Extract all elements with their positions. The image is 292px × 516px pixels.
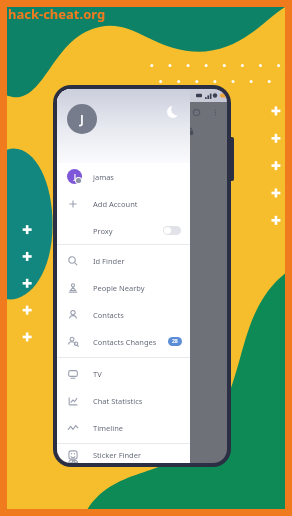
button[interactable]: Id Finder xyxy=(57,247,190,274)
staticText: J xyxy=(80,110,84,128)
button[interactable]: J xyxy=(57,163,190,190)
staticText: 28 xyxy=(172,338,178,345)
staticText: Add Account xyxy=(93,199,138,209)
button[interactable]: TV xyxy=(57,360,190,387)
button[interactable]: More options xyxy=(211,108,220,117)
staticText: Chat Statistics xyxy=(93,396,143,406)
staticText: Timeline xyxy=(93,423,124,433)
staticText: Contacts xyxy=(93,310,124,320)
staticText: Id Finder xyxy=(93,256,125,266)
staticText: Contacts Changes xyxy=(93,337,157,347)
button[interactable]: Sticker Finder xyxy=(57,446,190,463)
button[interactable]: Timeline xyxy=(57,414,190,441)
staticText: hack-cheat.org xyxy=(8,5,106,23)
staticText: Sticker Finder xyxy=(93,450,142,460)
staticText: TV xyxy=(93,369,102,379)
button[interactable]: Add Account xyxy=(57,190,190,217)
button[interactable]: Search xyxy=(192,108,201,117)
button[interactable]: J xyxy=(67,104,97,134)
button[interactable]: Proxy xyxy=(57,217,190,244)
button[interactable]: People Nearby xyxy=(57,274,190,301)
button[interactable]: Night mode xyxy=(167,106,179,118)
staticText: People Nearby xyxy=(93,283,145,293)
staticText: Proxy xyxy=(93,226,113,236)
staticText: J xyxy=(74,172,76,182)
button[interactable]: Contacts Changes xyxy=(57,328,190,355)
button[interactable]: Contacts xyxy=(57,301,190,328)
button[interactable]: Chat Statistics xyxy=(57,387,190,414)
staticText: jamas xyxy=(93,172,114,182)
